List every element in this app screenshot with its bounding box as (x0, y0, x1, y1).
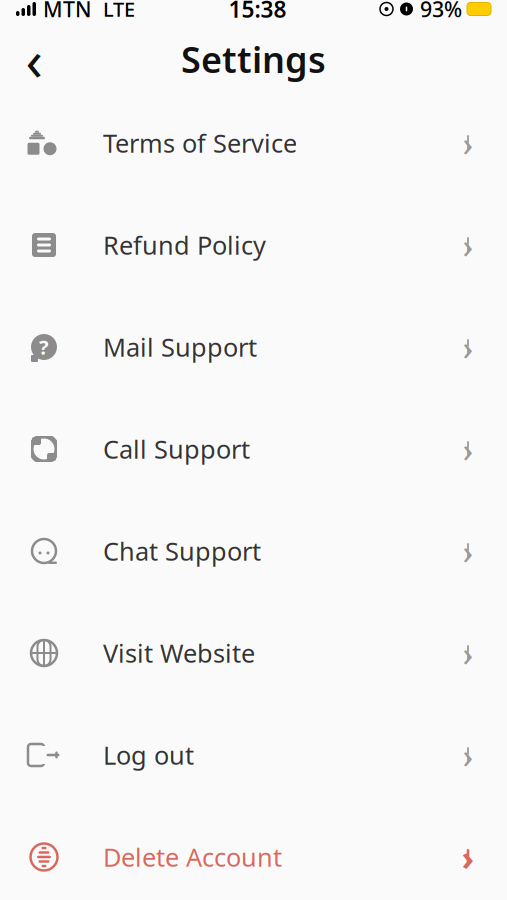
staticText: › (462, 732, 473, 778)
button[interactable]: Chat Support (0, 500, 507, 602)
button[interactable]: Terms of Service (0, 92, 507, 194)
staticText: › (461, 834, 474, 880)
staticText: LTE (103, 0, 135, 22)
staticText: MTN (43, 0, 92, 23)
staticText: Call Support (103, 432, 250, 466)
staticText: Terms of Service (103, 126, 297, 160)
button[interactable]: Refund Policy (0, 194, 507, 296)
staticText: Delete Account (103, 840, 282, 874)
button[interactable]: Back (12, 37, 56, 81)
staticText: › (462, 324, 473, 370)
staticText: › (462, 528, 473, 574)
staticText: › (462, 426, 473, 472)
staticText: Refund Policy (103, 228, 266, 262)
staticText: Settings (181, 35, 326, 83)
staticText: Visit Website (103, 636, 255, 670)
button[interactable]: Call Support (0, 398, 507, 500)
staticText: Chat Support (103, 534, 261, 568)
staticText: › (462, 630, 473, 676)
button[interactable]: Visit Website (0, 602, 507, 704)
staticText: Mail Support (103, 330, 257, 364)
button[interactable]: Log out (0, 704, 507, 806)
staticText: ? (39, 334, 49, 360)
staticText: › (462, 222, 473, 268)
staticText: ‹ (25, 22, 42, 96)
button[interactable]: ? (0, 296, 507, 398)
button[interactable]: Delete Account (0, 806, 507, 900)
staticText: › (462, 120, 473, 166)
staticText: Log out (103, 738, 194, 772)
staticText: 15:38 (228, 0, 286, 24)
staticText: 93% (420, 0, 462, 23)
